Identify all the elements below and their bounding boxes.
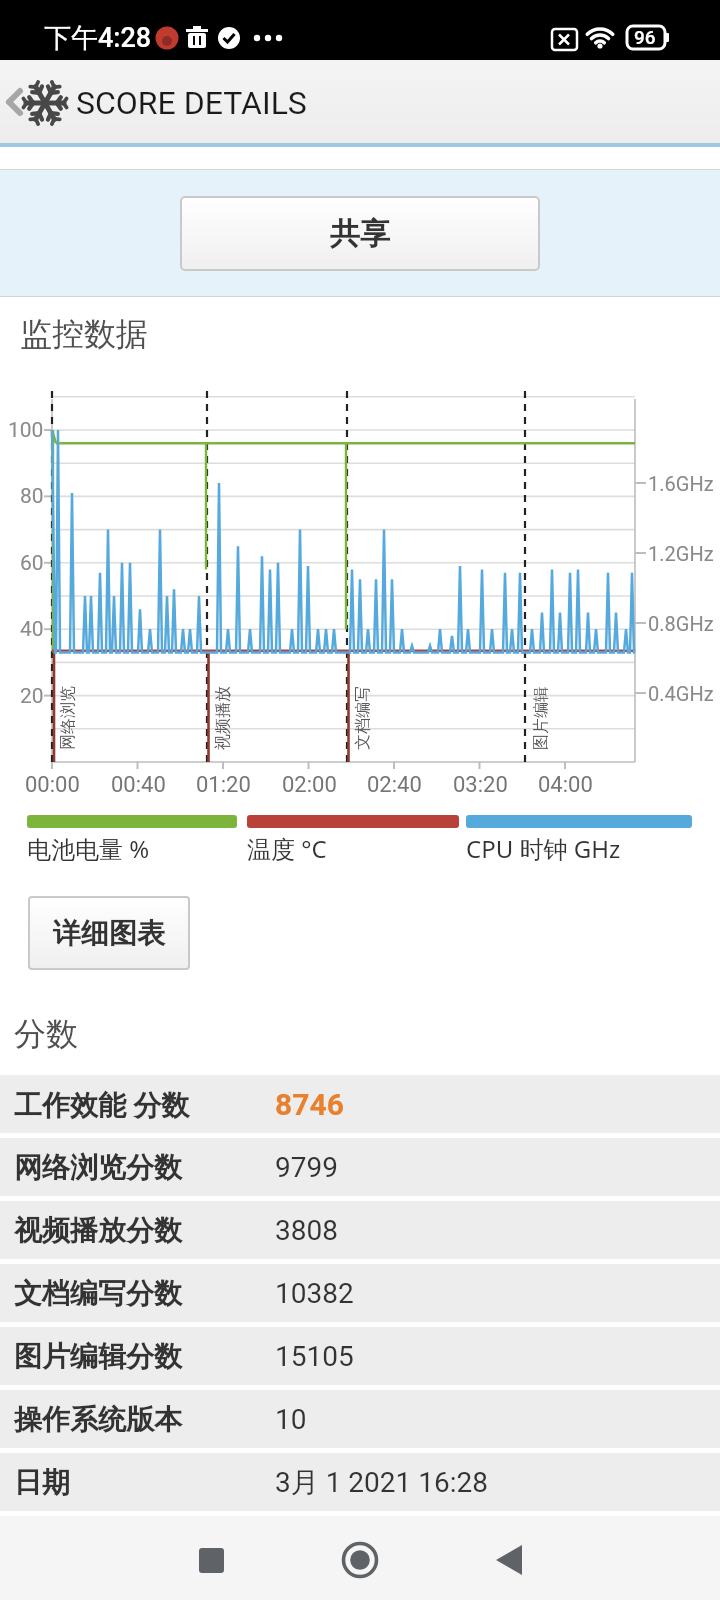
staticText: 01:20 (196, 772, 251, 798)
staticText: 15105 (275, 1340, 354, 1373)
staticText: 20 (20, 684, 44, 709)
staticText: 3月 1 2021 16:28 (275, 1465, 488, 1500)
staticText: 文档编写分数 (14, 1276, 182, 1311)
staticText: 04:00 (538, 772, 593, 798)
staticText: 图片编辑分数 (14, 1339, 182, 1374)
staticText: 00:00 (25, 772, 80, 798)
staticText: 96 (634, 26, 656, 48)
button[interactable]: SCORE DETAILS (0, 60, 720, 143)
button[interactable] (240, 1516, 480, 1600)
staticText: 监控数据 (20, 314, 148, 354)
staticText: 网络浏览分数 (14, 1150, 182, 1185)
button[interactable]: 文档编写分数 (0, 1264, 720, 1322)
staticText: 02:00 (282, 772, 337, 798)
staticText: 工作效能 分数 (14, 1085, 190, 1123)
button[interactable]: 视频播放分数 (0, 1201, 720, 1259)
button[interactable]: 工作效能 分数 (0, 1075, 720, 1133)
staticText: 分数 (14, 1014, 78, 1054)
staticText: 文档编写 (353, 686, 373, 750)
button[interactable]: 共享 (180, 196, 540, 271)
staticText: 日期 (14, 1465, 70, 1500)
staticText: 8746 (275, 1087, 344, 1122)
staticText: 网络浏览 (58, 686, 78, 750)
staticText: SCORE DETAILS (76, 84, 307, 122)
staticText: 9799 (275, 1151, 338, 1184)
staticText: CPU 时钟 GHz (466, 832, 621, 865)
staticText: 00:40 (111, 772, 166, 798)
staticText: 3808 (275, 1214, 338, 1247)
staticText: 操作系统版本 (14, 1402, 182, 1437)
staticText: 视频播放分数 (14, 1213, 182, 1248)
staticText: 02:40 (367, 772, 422, 798)
staticText: 80 (20, 484, 44, 509)
staticText: 共享 (330, 215, 390, 253)
staticText: 0.8GHz (648, 612, 714, 635)
staticText: 0.4GHz (648, 682, 714, 705)
button[interactable]: 网络浏览分数 (0, 1138, 720, 1196)
staticText: 视频播放 (213, 686, 233, 750)
staticText: 03:20 (453, 772, 508, 798)
staticText: 温度 °C (247, 832, 327, 865)
staticText: 10 (275, 1403, 307, 1436)
button[interactable] (0, 1516, 240, 1600)
button[interactable]: 操作系统版本 (0, 1390, 720, 1448)
staticText: 1.6GHz (648, 472, 714, 495)
staticText: 60 (20, 551, 44, 576)
staticText: 100 (8, 418, 44, 443)
staticText: 图片编辑 (531, 686, 551, 750)
button[interactable]: 日期 (0, 1453, 720, 1511)
staticText: 详细图表 (53, 916, 165, 951)
staticText: 下午4:28 (44, 21, 152, 55)
staticText: 10382 (275, 1277, 354, 1310)
button[interactable]: 详细图表 (28, 896, 190, 970)
staticText: 电池电量 % (27, 832, 150, 865)
staticText: 1.2GHz (648, 542, 714, 565)
staticText: 40 (20, 617, 44, 642)
button[interactable]: 图片编辑分数 (0, 1327, 720, 1385)
button[interactable] (480, 1516, 720, 1600)
